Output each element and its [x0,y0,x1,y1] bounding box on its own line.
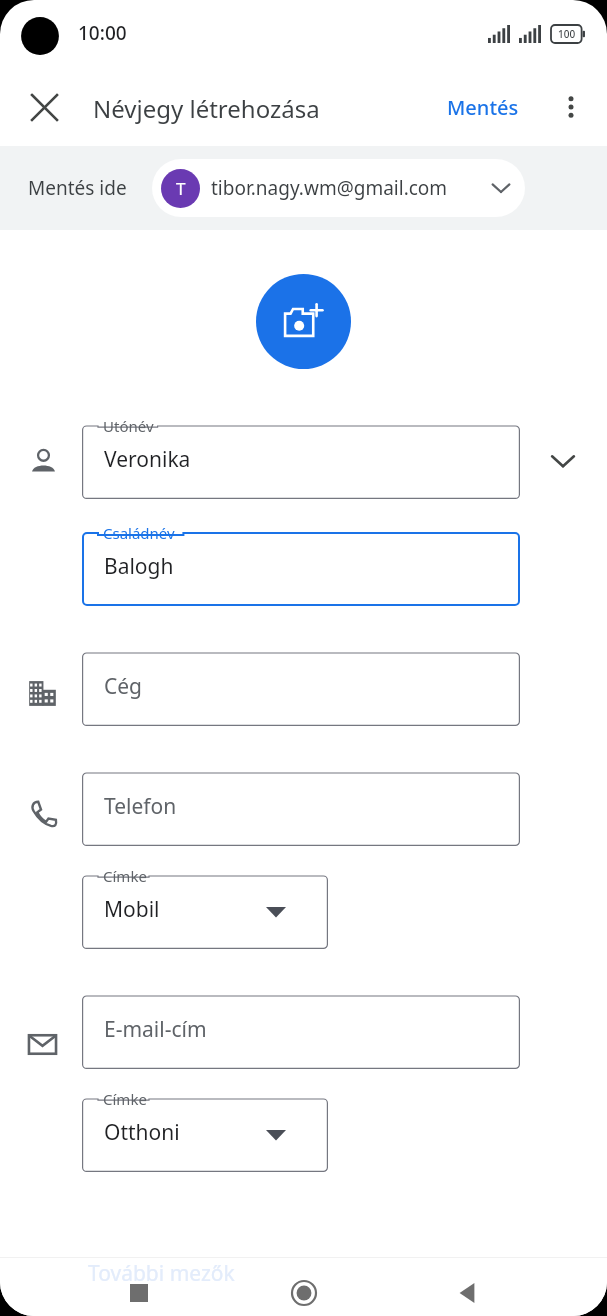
staticText: 10:00 [78,20,127,46]
button[interactable]: Címke [82,866,328,949]
staticText: T [176,177,186,200]
button[interactable]: Utónév [82,416,520,499]
staticText: Mentés ide [28,175,127,201]
button[interactable]: T [152,159,525,217]
staticText: Cég [104,672,143,701]
staticText: tibor.nagy.wm@gmail.com [211,175,448,201]
button[interactable]: Expand name fields [541,439,585,483]
staticText: Családnév [103,523,175,543]
button[interactable]: Back [442,1270,494,1316]
staticText: E-mail-cím [104,1015,207,1044]
staticText: Veronika [104,445,191,474]
button[interactable]: E-mail-cím [82,986,520,1069]
staticText: Mentés [447,94,519,121]
staticText: Címke [103,1089,147,1109]
staticText: Utónév [103,416,154,436]
staticText: Otthoni [104,1118,180,1147]
button[interactable]: Cég [82,643,520,726]
staticText: Névjegy létrehozása [93,92,320,125]
button[interactable]: Címke [82,1089,328,1172]
button[interactable]: Mentés [441,88,525,127]
button[interactable]: Telefon [82,763,520,846]
button[interactable]: További mezők [88,1259,235,1288]
button[interactable]: Add photo [256,274,351,369]
staticText: 100 [558,27,576,41]
staticText: Címke [103,866,147,886]
button[interactable]: More options [543,79,599,135]
staticText: Balogh [104,552,174,581]
button[interactable]: Recents [113,1270,165,1316]
button[interactable]: Home [278,1270,330,1316]
button[interactable]: Close [14,77,74,137]
staticText: Mobil [104,895,160,924]
staticText: Telefon [104,792,177,821]
button[interactable]: Családnév [82,523,520,606]
